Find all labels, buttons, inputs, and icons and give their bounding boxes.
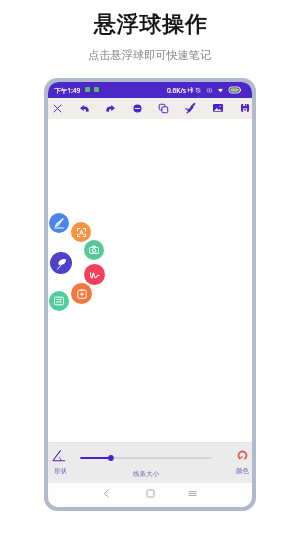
- button[interactable]: Shape: [48, 445, 72, 481]
- staticText: 点击悬浮球即可快速笔记: [88, 48, 212, 62]
- button[interactable]: 线条大小: [130, 468, 162, 480]
- staticText: 形状: [54, 467, 67, 475]
- button[interactable]: Scan text: [71, 222, 91, 242]
- staticText: 0.6K/s: [167, 86, 187, 95]
- button[interactable]: Todo: [71, 283, 92, 304]
- button[interactable]: Colour: [230, 445, 252, 481]
- button[interactable]: Redo: [101, 99, 119, 117]
- button[interactable]: Handwrite: [84, 264, 105, 285]
- button[interactable]: Undo: [75, 99, 93, 117]
- button[interactable]: Draw: [49, 213, 69, 233]
- button[interactable]: Home: [141, 484, 159, 502]
- button[interactable]: List: [49, 291, 69, 311]
- button[interactable]: Close: [48, 99, 66, 117]
- staticText: 颜色: [236, 467, 249, 475]
- staticText: 线条大小: [133, 470, 159, 478]
- button[interactable]: Recents: [183, 484, 201, 502]
- button[interactable]: Back: [97, 484, 115, 502]
- button[interactable]: Eraser: [128, 99, 146, 117]
- button[interactable]: Image: [209, 99, 227, 117]
- staticText: 悬浮球操作: [93, 11, 207, 39]
- button[interactable]: Note: [50, 252, 72, 274]
- button[interactable]: Brush: [181, 99, 199, 117]
- button[interactable]: Camera: [84, 240, 104, 260]
- staticText: 下午1:49: [54, 86, 81, 95]
- button[interactable]: Save: [236, 99, 252, 117]
- button[interactable]: Duplicate: [154, 99, 172, 117]
